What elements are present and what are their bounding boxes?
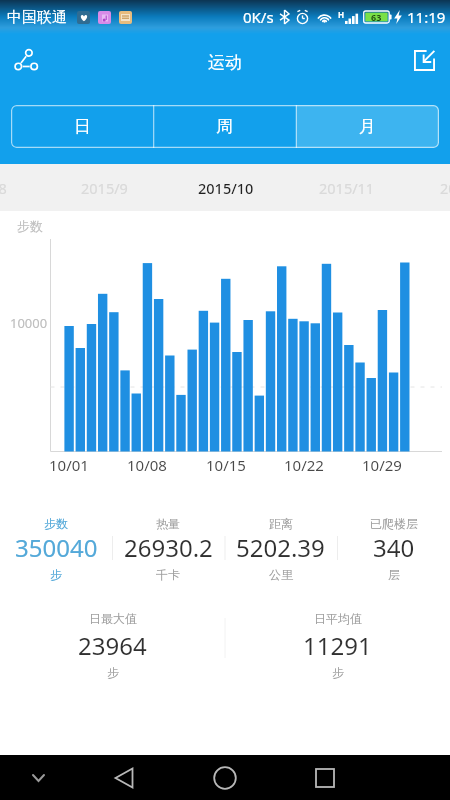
button[interactable]: 热量 <box>112 490 224 600</box>
staticText: 2015/10 <box>198 178 254 198</box>
button[interactable]: 已爬楼层 <box>337 490 450 600</box>
staticText: 公里 <box>269 567 293 582</box>
button[interactable]: 周 <box>153 105 296 148</box>
staticText: 10/15 <box>206 455 246 475</box>
staticText: 2015/9 <box>81 178 128 198</box>
staticText: 日最大值 <box>89 611 137 626</box>
staticText: 月 <box>359 116 376 137</box>
button[interactable]: 2015/9 <box>44 164 165 211</box>
staticText: 运动 <box>208 52 242 73</box>
staticText: 步数 <box>17 218 43 234</box>
staticText: 2015/11 <box>319 178 375 198</box>
button[interactable]: 日 <box>11 105 153 148</box>
button[interactable]: 距离 <box>224 490 337 600</box>
staticText: 距离 <box>269 516 293 531</box>
button[interactable]: Export <box>402 38 446 82</box>
staticText: 层 <box>388 567 400 582</box>
staticText: 10/29 <box>362 455 402 475</box>
staticText: 日 <box>74 116 91 137</box>
staticText: 23964 <box>78 629 147 662</box>
button[interactable]: Recent apps <box>303 755 347 800</box>
staticText: 2015/12 <box>440 178 450 198</box>
staticText: 10/22 <box>284 455 324 475</box>
staticText: 10000 <box>10 314 48 332</box>
staticText: 步 <box>332 665 344 680</box>
button[interactable]: 步数 <box>0 490 112 600</box>
button[interactable]: 2015/11 <box>286 164 407 211</box>
staticText: 350040 <box>15 531 98 564</box>
button[interactable]: Home <box>203 755 247 800</box>
staticText: 2015/8 <box>0 178 7 198</box>
staticText: 已爬楼层 <box>370 516 418 531</box>
button[interactable]: 日平均值 <box>225 600 450 690</box>
staticText: 63 <box>371 11 382 23</box>
button[interactable]: Hide keyboard <box>16 755 60 800</box>
staticText: 步数 <box>44 516 68 531</box>
staticText: 周 <box>216 116 233 137</box>
staticText: 11:19 <box>407 7 446 27</box>
staticText: 步 <box>107 665 119 680</box>
staticText: 5202.39 <box>236 531 325 564</box>
button[interactable]: 2015/10 <box>165 164 286 211</box>
staticText: 热量 <box>156 516 180 531</box>
staticText: 10/08 <box>127 455 167 475</box>
staticText: H <box>338 9 345 20</box>
staticText: 日平均值 <box>314 611 362 626</box>
staticText: 340 <box>373 531 415 564</box>
button[interactable]: Back <box>102 755 146 800</box>
staticText: 0K/s <box>243 7 274 27</box>
staticText: 11291 <box>303 629 372 662</box>
staticText: 中国联通 <box>7 8 67 27</box>
button[interactable]: 日最大值 <box>0 600 225 690</box>
staticText: 步 <box>50 567 62 582</box>
button[interactable]: Share <box>4 38 48 82</box>
staticText: 10/01 <box>49 455 89 475</box>
button[interactable]: 月 <box>296 105 439 148</box>
staticText: 千卡 <box>156 567 180 582</box>
staticText: 26930.2 <box>124 531 213 564</box>
